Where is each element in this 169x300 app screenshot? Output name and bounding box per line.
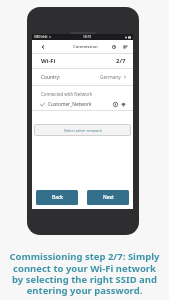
staticText: SIM fehlt (34, 35, 48, 39)
staticText: Commission (73, 44, 98, 50)
staticText: Wi-Fi (41, 57, 56, 65)
button[interactable]: Country: (32, 69, 133, 85)
button[interactable]: Customer_Network (32, 98, 133, 110)
button[interactable]: Next (87, 190, 129, 205)
button[interactable]: Select other network (34, 124, 131, 136)
staticText: Germany (100, 74, 121, 81)
staticText: Connected with Network (41, 91, 93, 97)
button[interactable]: Back (36, 190, 78, 205)
staticText: Back (52, 194, 63, 201)
staticText: 2/7 (116, 57, 126, 65)
button[interactable]: Back (38, 42, 47, 51)
staticText: Next (103, 194, 114, 201)
staticText: Select other network (64, 128, 102, 133)
button[interactable]: Help (106, 41, 122, 53)
button[interactable]: Menu (117, 41, 133, 53)
staticText: Country: (41, 74, 61, 81)
staticText: Customer_Network (48, 101, 92, 108)
staticText: Commissioning step 2/7: Simply connect t… (4, 250, 165, 297)
staticText: 18:19 (83, 35, 92, 39)
